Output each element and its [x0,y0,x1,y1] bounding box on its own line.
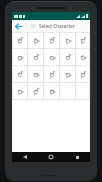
button[interactable] [44,49,60,66]
button[interactable] [44,83,60,100]
button[interactable]: Navigate up [12,20,24,32]
button[interactable] [44,32,60,49]
button[interactable] [28,32,44,49]
button[interactable] [76,32,90,49]
button[interactable] [12,32,28,49]
button[interactable] [60,32,76,49]
staticText: Select Character [39,23,75,29]
button[interactable] [12,49,28,66]
button[interactable] [28,49,44,66]
button[interactable] [28,66,44,83]
button[interactable] [60,66,76,83]
button[interactable] [76,66,90,83]
button[interactable] [28,83,44,100]
button[interactable] [60,49,76,66]
button[interactable] [12,66,28,83]
button[interactable]: Home [38,152,64,162]
button[interactable] [12,83,28,100]
button[interactable] [44,66,60,83]
button[interactable] [76,49,90,66]
button[interactable]: Back [12,152,38,162]
button[interactable]: Recent apps [64,152,90,162]
